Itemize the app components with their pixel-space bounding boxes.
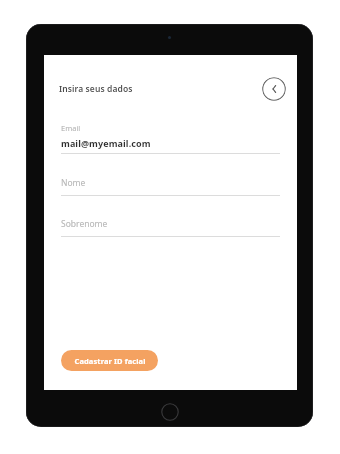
- button[interactable]: Email: [61, 123, 280, 154]
- staticText: Cadastrar ID facial: [74, 356, 146, 366]
- staticText: Email: [61, 123, 81, 133]
- button[interactable]: Nome: [61, 177, 280, 196]
- button[interactable]: Cadastrar ID facial: [61, 350, 158, 371]
- staticText: Insira seus dados: [59, 83, 133, 95]
- button[interactable]: Sobrenome: [61, 218, 280, 237]
- staticText: Nome: [61, 177, 86, 189]
- button[interactable]: Back: [262, 77, 286, 101]
- staticText: mail@myemail.com: [61, 137, 151, 149]
- staticText: Sobrenome: [61, 218, 108, 230]
